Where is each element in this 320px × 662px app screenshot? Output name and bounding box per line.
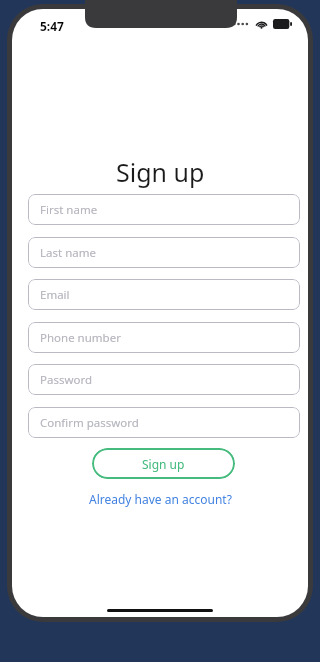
staticText: Confirm password xyxy=(40,415,139,431)
staticText: First name xyxy=(40,202,98,218)
button[interactable]: Last name xyxy=(28,237,300,268)
staticText: Phone number xyxy=(40,330,121,346)
button[interactable]: Already have an account? xyxy=(83,488,238,510)
staticText: Sign up xyxy=(116,155,205,189)
button[interactable]: Password xyxy=(28,364,300,395)
staticText: Already have an account? xyxy=(89,491,232,507)
button[interactable]: Phone number xyxy=(28,322,300,353)
button[interactable]: Email xyxy=(28,279,300,310)
button[interactable]: Confirm password xyxy=(28,407,300,438)
staticText: Password xyxy=(40,372,93,388)
button[interactable]: Sign up xyxy=(92,448,235,479)
staticText: 5:47 xyxy=(40,18,64,34)
button[interactable]: First name xyxy=(28,194,300,225)
staticText: Email xyxy=(40,287,70,303)
staticText: Sign up xyxy=(142,456,185,472)
staticText: Last name xyxy=(40,245,96,261)
